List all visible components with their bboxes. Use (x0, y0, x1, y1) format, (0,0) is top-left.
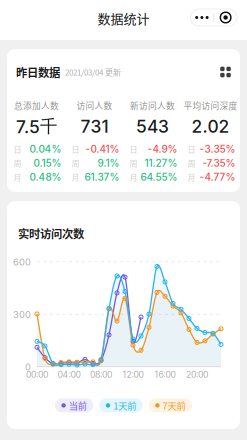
staticText: 月 (187, 171, 195, 183)
button[interactable]: Close (214, 9, 237, 26)
staticText: 08:00 (90, 369, 112, 380)
staticText: 543 (136, 116, 169, 137)
button[interactable]: Grid view (220, 66, 231, 77)
staticText: 日 (71, 143, 79, 155)
staticText: 实时访问次数 (18, 225, 84, 241)
staticText: 9.1% (97, 157, 119, 169)
staticText: 600 (13, 256, 31, 268)
staticText: 300 (13, 309, 31, 320)
button[interactable]: More (190, 9, 213, 26)
staticText: 7天前 (163, 399, 186, 412)
staticText: 0.48% (29, 171, 61, 183)
staticText: 昨日数据 (16, 64, 60, 80)
staticText: 总添加人数 (14, 99, 59, 112)
staticText: 平均访问深度 (183, 99, 237, 112)
staticText: 周 (187, 157, 195, 169)
staticText: 当前 (69, 399, 87, 412)
staticText: 月 (129, 171, 137, 183)
staticText: 20:00 (186, 369, 208, 380)
staticText: 日 (129, 143, 137, 155)
staticText: 数据统计 (97, 8, 149, 27)
staticText: 04:00 (57, 369, 80, 380)
staticText: 日 (187, 143, 195, 155)
staticText: 731 (80, 116, 108, 137)
staticText: 7.5千 (16, 116, 57, 137)
staticText: 64.55% (140, 171, 177, 183)
staticText: 2.02 (191, 116, 229, 137)
staticText: -3.35% (199, 143, 235, 155)
staticText: 新访问人数 (130, 99, 175, 112)
staticText: 16:00 (154, 369, 175, 380)
staticText: 0.15% (33, 157, 61, 169)
staticText: 2021/03/04 更新 (65, 66, 121, 78)
staticText: -4.77% (199, 171, 235, 183)
staticText: 访问人数 (76, 99, 112, 112)
staticText: 月 (13, 171, 21, 183)
button[interactable]: 1天前 (99, 398, 143, 412)
staticText: 周 (129, 157, 137, 169)
staticText: 月 (71, 171, 79, 183)
staticText: 11.27% (144, 157, 177, 169)
staticText: 0 (25, 361, 31, 373)
staticText: 12:00 (122, 369, 143, 380)
staticText: 0.04% (29, 143, 61, 155)
staticText: 周 (13, 157, 21, 169)
staticText: -7.35% (202, 157, 235, 169)
staticText: 61.37% (84, 171, 119, 183)
staticText: -0.41% (85, 143, 119, 155)
staticText: 周 (71, 157, 79, 169)
staticText: 1天前 (113, 399, 136, 412)
button[interactable]: 7天前 (149, 398, 192, 412)
staticText: 日 (13, 143, 21, 155)
staticText: -4.9% (147, 143, 177, 155)
staticText: 00:00 (26, 369, 48, 380)
button[interactable]: 当前 (55, 398, 93, 412)
